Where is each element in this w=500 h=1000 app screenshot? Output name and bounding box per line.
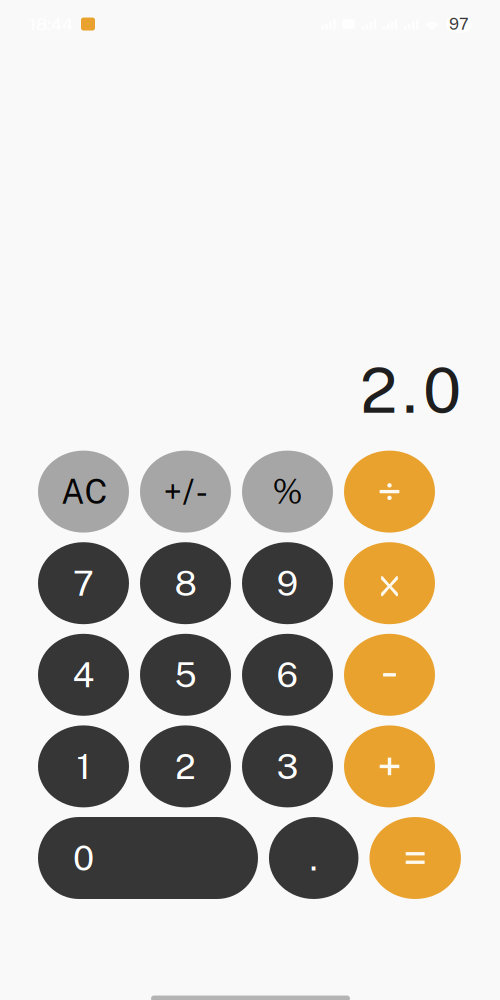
staticText: 1 [76,746,90,787]
button[interactable]: 2 [140,725,231,807]
button[interactable]: Percent [242,451,333,533]
staticText: 0 [73,838,94,878]
button[interactable]: 6 [242,634,333,716]
staticText: 5 [174,654,196,695]
staticText: 6 [276,654,298,695]
staticText: . [403,353,417,427]
staticText: AC [61,472,107,511]
button[interactable]: 7 [38,542,129,624]
button[interactable]: Minus [344,634,435,716]
staticText: 8 [174,563,196,603]
staticText: . [310,838,318,878]
button[interactable]: 5 [140,634,231,716]
button[interactable]: Divide [344,451,435,533]
button[interactable]: Plus [344,725,435,807]
button[interactable]: Equals [369,817,461,899]
button[interactable]: 1 [38,725,129,807]
button[interactable]: All clear [38,451,129,533]
staticText: 4 [72,654,94,695]
staticText: 2 [175,746,196,787]
staticText: 7 [73,563,94,603]
staticText: % [272,472,302,511]
button[interactable]: 9 [242,542,333,624]
button[interactable]: Decimal point [269,817,358,899]
staticText: 0 [423,353,461,427]
staticText: 3 [276,746,298,787]
button[interactable]: 0 [38,817,258,899]
staticText: 9 [276,563,298,603]
staticText: +/- [163,472,208,511]
button[interactable]: 3 [242,725,333,807]
button[interactable]: Plus minus [140,451,231,533]
staticText: 97 [449,15,469,33]
button[interactable]: Multiply [344,542,435,624]
staticText: 2 [360,353,397,427]
button[interactable]: 4 [38,634,129,716]
button[interactable]: 8 [140,542,231,624]
